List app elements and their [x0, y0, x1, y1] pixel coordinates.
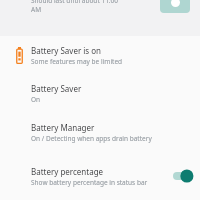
button[interactable]: Battery Manager [0, 112, 200, 152]
button[interactable]: Battery percentage [0, 152, 200, 200]
staticText: Battery Saver [31, 83, 82, 94]
staticText: Show battery percentage in status bar [31, 178, 148, 187]
button[interactable]: Battery Saver switch [160, 0, 190, 13]
staticText: Battery percentage [31, 166, 104, 177]
staticText: Battery Saver is on [31, 45, 102, 56]
staticText: On / Detecting when apps drain battery [31, 134, 152, 143]
button[interactable]: Battery Saver is on [0, 36, 200, 74]
other: Battery percentage switch [173, 172, 192, 180]
button[interactable]: Battery Saver [0, 74, 200, 112]
staticText: Should last until about 11:00 AM [31, 0, 156, 14]
staticText: On [31, 95, 41, 104]
button[interactable]: Should last until about 11:00 AM [0, 0, 200, 36]
staticText: Battery Manager [31, 122, 95, 133]
staticText: Some features may be limited [31, 57, 123, 66]
